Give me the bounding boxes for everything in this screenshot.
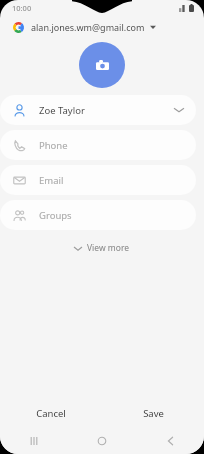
button[interactable]: Email — [0, 165, 196, 195]
staticText: Email — [39, 174, 64, 187]
button[interactable]: View more — [66, 238, 138, 258]
staticText: Save — [143, 407, 164, 420]
staticText: View more — [87, 242, 130, 254]
staticText: Cancel — [36, 407, 66, 420]
button[interactable]: Phone — [0, 130, 196, 160]
button[interactable]: alan.jones.wm@gmail.com — [0, 16, 204, 38]
staticText: alan.jones.wm@gmail.com — [31, 21, 145, 33]
staticText: Zoe Taylor — [39, 104, 85, 117]
staticText: Groups — [39, 209, 72, 222]
button[interactable]: Back — [136, 428, 204, 454]
button[interactable]: Cancel — [0, 398, 102, 428]
button[interactable]: Groups — [0, 200, 196, 230]
button[interactable]: Zoe Taylor — [0, 95, 196, 125]
button[interactable]: Home — [68, 428, 136, 454]
button[interactable]: Change photo — [79, 42, 125, 88]
staticText: Phone — [39, 139, 68, 152]
staticText: 10:00 — [12, 3, 32, 13]
button[interactable]: Recent apps — [0, 428, 68, 454]
button[interactable]: Save — [102, 398, 204, 428]
